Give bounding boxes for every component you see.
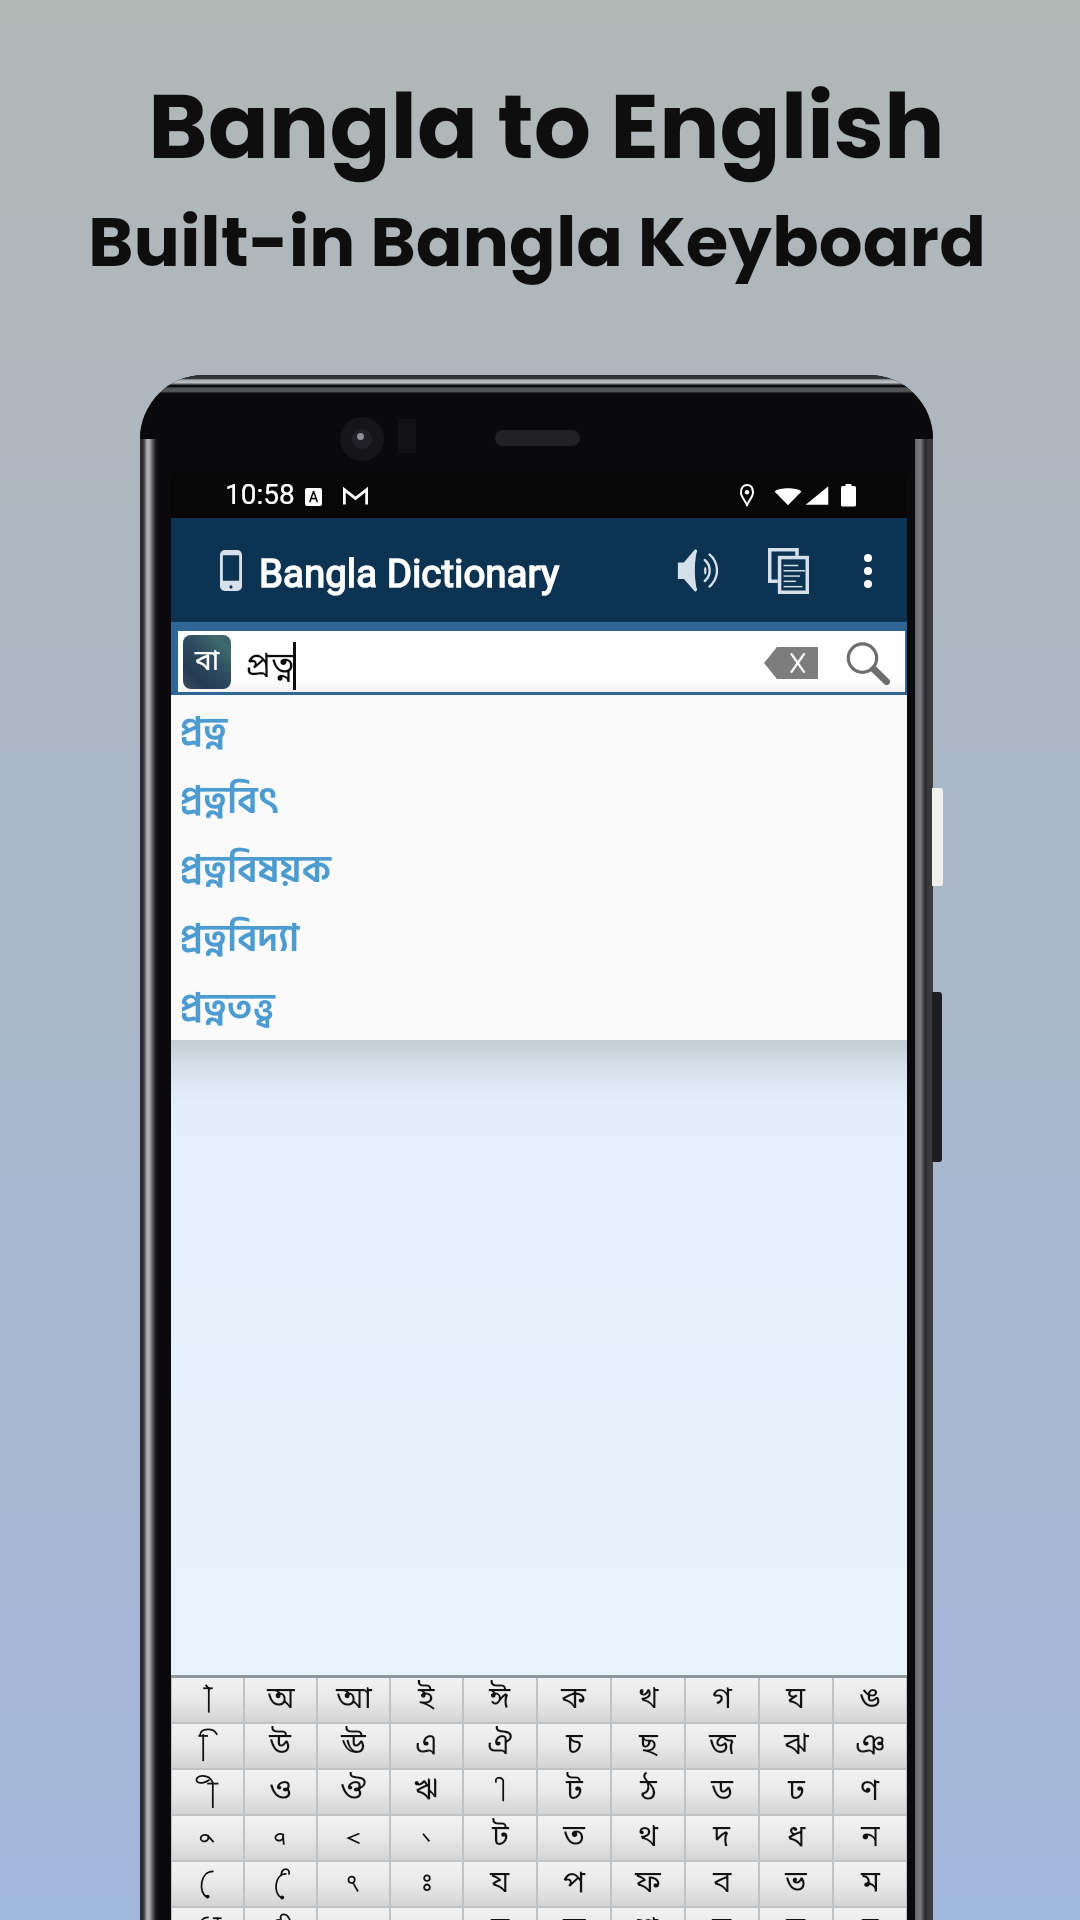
button[interactable]: ন (834, 1816, 906, 1860)
staticText: ত (563, 1818, 585, 1859)
button[interactable]: চ (538, 1724, 610, 1768)
button[interactable]: প্রত্নতত্ত্ব (171, 971, 907, 1040)
button[interactable]: ঔ (318, 1770, 389, 1814)
button[interactable]: ঢ (760, 1770, 832, 1814)
staticText: গ (712, 1680, 733, 1721)
button[interactable]: ঈ (464, 1678, 536, 1722)
button[interactable]: ষ (686, 1908, 758, 1920)
button[interactable] (245, 1908, 316, 1920)
button[interactable]: Backspace (764, 647, 818, 679)
staticText: জ (709, 1726, 736, 1767)
button[interactable]: প্রত্ন (171, 695, 907, 764)
button[interactable]: হ (834, 1908, 906, 1920)
button[interactable]: এ (391, 1724, 462, 1768)
button[interactable]: য (464, 1862, 536, 1906)
button[interactable] (172, 1770, 243, 1814)
button[interactable]: ঊ (318, 1724, 389, 1768)
staticText: প্রত্নতত্ত্ব (180, 978, 275, 1039)
button[interactable] (172, 1908, 243, 1920)
button[interactable] (245, 1862, 316, 1906)
button[interactable]: ত (538, 1816, 610, 1860)
staticText: উ (269, 1726, 292, 1767)
staticText: ও (269, 1772, 292, 1813)
button[interactable]: ও (245, 1770, 316, 1814)
button[interactable]: প্রত্নবিৎ (171, 764, 907, 833)
button[interactable]: র (464, 1908, 536, 1920)
staticText: Bangla Dictionary (259, 551, 560, 596)
button[interactable]: ই (391, 1678, 462, 1722)
button[interactable]: Copy (747, 528, 829, 613)
button[interactable] (172, 1862, 243, 1906)
button[interactable]: ট (538, 1770, 610, 1814)
staticText: ঘ (786, 1680, 806, 1721)
button[interactable]: ণ (834, 1770, 906, 1814)
button[interactable]: আ (318, 1678, 389, 1722)
button[interactable]: গ (686, 1678, 758, 1722)
staticText: ট (566, 1772, 583, 1813)
button[interactable]: উ (245, 1724, 316, 1768)
button[interactable]: ঘ (760, 1678, 832, 1722)
button[interactable]: অ (245, 1678, 316, 1722)
button[interactable]: ট (464, 1816, 536, 1860)
staticText: প্রত্নবিৎ (180, 771, 280, 832)
staticText: 10:58 (225, 478, 295, 511)
staticText: ভ (785, 1864, 807, 1905)
button[interactable]: ধ (760, 1816, 832, 1860)
button[interactable] (172, 1724, 243, 1768)
staticText: প্রত্ন (245, 645, 295, 690)
staticText: ন (861, 1818, 880, 1859)
button[interactable]: থ (612, 1816, 684, 1860)
button[interactable]: ঐ (464, 1724, 536, 1768)
button[interactable]: ড (686, 1770, 758, 1814)
button[interactable]: ফ (612, 1862, 684, 1906)
button[interactable]: Switch keyboard language (183, 635, 231, 689)
button[interactable] (391, 1816, 462, 1860)
button[interactable] (172, 1678, 243, 1722)
button[interactable]: ছ (612, 1724, 684, 1768)
button[interactable]: প (538, 1862, 610, 1906)
button[interactable]: ঙ (834, 1678, 906, 1722)
button[interactable]: ম (834, 1862, 906, 1906)
button[interactable] (391, 1862, 462, 1906)
button[interactable]: ল (538, 1908, 610, 1920)
button[interactable] (464, 1770, 536, 1814)
staticText: ষ (712, 1910, 732, 1920)
button[interactable]: More options (829, 528, 907, 613)
button[interactable] (245, 1816, 316, 1860)
staticText: ঠ (640, 1772, 657, 1813)
staticText: প্রত্ন (180, 702, 228, 763)
button[interactable]: খ (612, 1678, 684, 1722)
button[interactable]: ঝ (760, 1724, 832, 1768)
button[interactable]: দ (686, 1816, 758, 1860)
staticText: ঝ (784, 1726, 809, 1767)
staticText: প্রত্নবিদ্যা (180, 909, 300, 970)
staticText: আ (336, 1680, 372, 1721)
button[interactable] (318, 1816, 389, 1860)
button[interactable]: Search (847, 643, 890, 685)
button[interactable]: ক (538, 1678, 610, 1722)
button[interactable]: প্রত্নবিষয়ক (171, 833, 907, 902)
staticText: র (491, 1910, 510, 1920)
button[interactable]: ব (686, 1862, 758, 1906)
staticText: খ (638, 1680, 659, 1721)
button[interactable]: জ (686, 1724, 758, 1768)
staticText: ঐ (487, 1726, 514, 1767)
button[interactable]: প্রত্নবিদ্যা (171, 902, 907, 971)
button[interactable]: ঋ (391, 1770, 462, 1814)
button[interactable]: Pronounce (656, 528, 740, 613)
staticText: শ (637, 1910, 659, 1920)
staticText: বা (195, 644, 220, 681)
button[interactable]: ঠ (612, 1770, 684, 1814)
staticText: দ (713, 1818, 731, 1859)
button[interactable]: ভ (760, 1862, 832, 1906)
button[interactable] (172, 1816, 243, 1860)
staticText: ছ (639, 1726, 658, 1767)
button[interactable] (318, 1862, 389, 1906)
button[interactable]: শ (612, 1908, 684, 1920)
button[interactable]: ঞ (834, 1724, 906, 1768)
staticText: ড (711, 1772, 734, 1813)
button[interactable]: স (760, 1908, 832, 1920)
staticText: ঈ (489, 1680, 511, 1721)
